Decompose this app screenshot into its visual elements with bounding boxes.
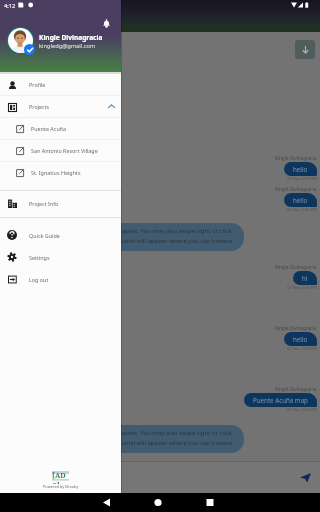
staticText: Puente Acuña map: [253, 396, 308, 404]
button[interactable]: Profile: [0, 74, 121, 95]
staticText: 04 Nov 2:53 PM: [287, 176, 317, 182]
button[interactable]: Settings: [0, 246, 121, 268]
staticText: Projects: [29, 103, 50, 110]
button[interactable]: St. Ignatius Heights: [0, 162, 121, 183]
button[interactable]: Notifications: [99, 16, 114, 31]
staticText: Hi! Type below to ask Brooky about your …: [0, 429, 232, 437]
staticText: 07 Nov 2:54 PM: [287, 346, 317, 352]
staticText: Hi! Type below to ask Brooky about your …: [0, 227, 232, 235]
staticText: Kingle Divinagracia: [275, 386, 317, 392]
button[interactable]: Puente Acuña map: [244, 393, 317, 407]
staticText: Project Info: [29, 200, 59, 207]
button[interactable]: hello: [284, 332, 317, 346]
staticText: 4:12: [4, 2, 16, 10]
button[interactable]: Scroll to bottom: [295, 40, 315, 59]
button[interactable]: Projects: [0, 96, 121, 117]
button[interactable]: Send: [297, 469, 313, 485]
button[interactable]: Hi! Type below to ask Brooky about your …: [0, 425, 244, 453]
button[interactable]: San Antonio Resort Village: [0, 140, 121, 161]
staticText: hello: [293, 165, 308, 173]
staticText: the menu button on the top left side and…: [0, 237, 233, 245]
staticText: hello: [293, 196, 308, 204]
button[interactable]: Hi! Type below to ask Brooky about your …: [0, 223, 244, 251]
staticText: [ADC]: [52, 471, 69, 484]
staticText: hi: [302, 274, 308, 282]
staticText: 07 Nov 2:54 PM: [287, 285, 317, 291]
button[interactable]: Project Info: [0, 192, 121, 214]
staticText: kingledg@gmail.com: [39, 42, 96, 50]
button[interactable]: Quick Guide: [0, 224, 121, 246]
staticText: San Antonio Resort Village: [31, 147, 98, 154]
staticText: 04 Nov 2:56 PM: [287, 207, 317, 213]
staticText: Settings: [29, 254, 50, 261]
staticText: 07 Nov 2:54 PM: [287, 407, 317, 413]
staticText: Quick Guide: [29, 232, 60, 239]
staticText: Profile: [29, 81, 46, 88]
staticText: Kingle Divinagracia: [275, 325, 317, 331]
staticText: Kingle Divinagracia: [275, 155, 317, 161]
button[interactable]: Log out: [0, 268, 121, 290]
staticText: the menu button on the top left side and…: [0, 439, 233, 447]
staticText: hello: [293, 335, 308, 343]
button[interactable]: hi: [293, 271, 317, 285]
staticText: Kingle Divinagracia: [39, 33, 103, 42]
staticText: Puente Acuña: [31, 125, 67, 132]
staticText: Powered by Brooky: [43, 484, 79, 489]
staticText: Log out: [29, 276, 49, 283]
staticText: St. Ignatius Heights: [31, 169, 81, 176]
button[interactable]: hello: [284, 162, 317, 176]
staticText: Kingle Divinagracia: [275, 186, 317, 192]
staticText: Kingle Divinagracia: [275, 264, 317, 270]
button[interactable]: Puente Acuña: [0, 118, 121, 139]
button[interactable]: hello: [284, 193, 317, 207]
